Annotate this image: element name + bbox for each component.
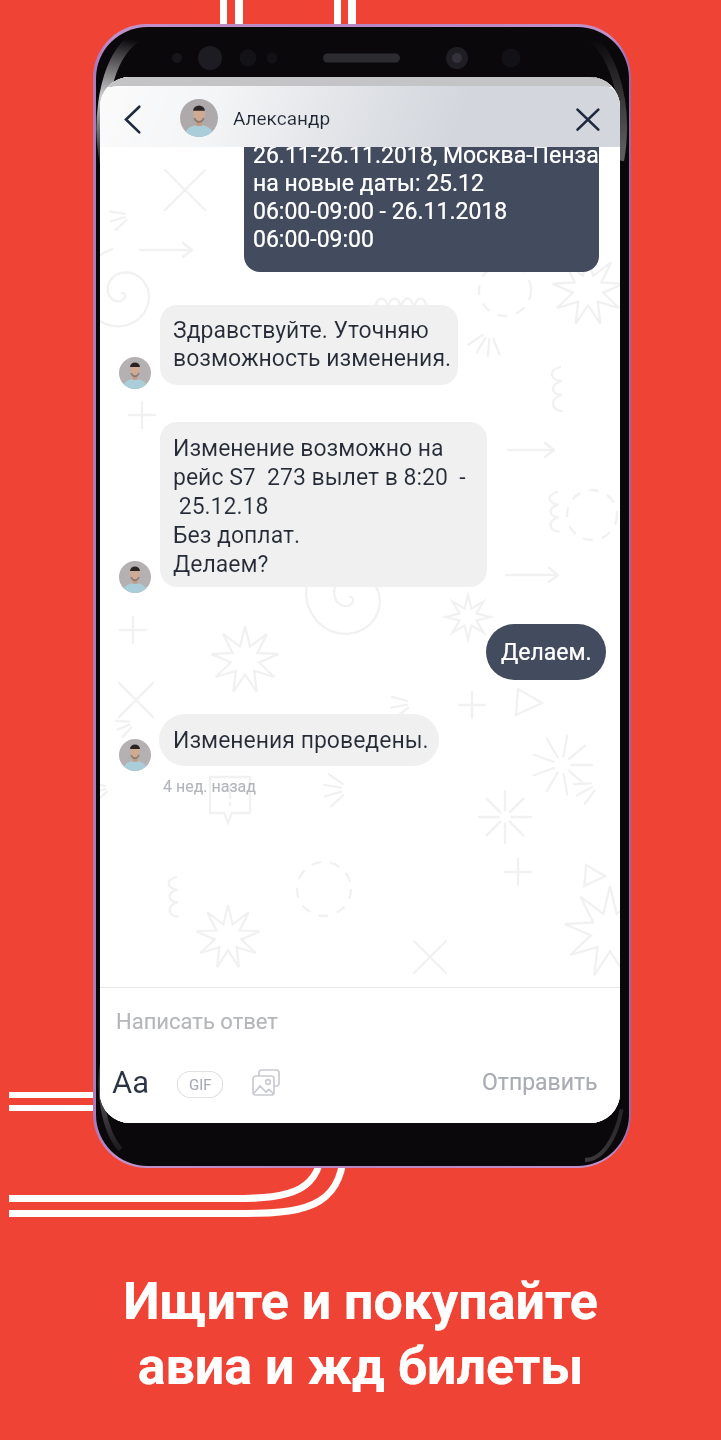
staticText: Ищите и покупайте авиа и жд билеты [0, 1271, 721, 1397]
button[interactable]: Format text [110, 1060, 152, 1104]
staticText: Изменения проведены. [173, 727, 429, 754]
staticText: 4 нед. назад [163, 777, 256, 796]
button[interactable]: Back [109, 92, 153, 136]
staticText: Написать ответ [116, 1009, 278, 1035]
button[interactable]: Изменение возможно на рейс S7 273 вылет … [160, 422, 487, 587]
staticText: Здравствуйте. Уточняю возможность измене… [173, 317, 452, 372]
staticText: GIF [189, 1076, 212, 1094]
button[interactable]: Отправить [482, 1062, 610, 1102]
staticText: Делаем. [501, 639, 592, 666]
button[interactable]: Attach image [249, 1067, 285, 1103]
button[interactable]: Делаем. [486, 624, 606, 680]
button[interactable]: 26.11-26.11.2018, Москва-Пенза на новые … [244, 77, 599, 272]
button[interactable]: Close [566, 97, 610, 141]
staticText: Отправить [482, 1069, 598, 1096]
button[interactable]: Изменения проведены. [159, 714, 439, 766]
staticText: Александр [233, 107, 331, 129]
staticText: Aa [112, 1064, 150, 1100]
button[interactable]: GIF [177, 1071, 223, 1098]
staticText: 26.11-26.11.2018, Москва-Пенза на новые … [253, 142, 599, 252]
staticText: Изменение возможно на рейс S7 273 вылет … [173, 435, 466, 577]
button[interactable]: Здравствуйте. Уточняю возможность измене… [160, 305, 458, 385]
